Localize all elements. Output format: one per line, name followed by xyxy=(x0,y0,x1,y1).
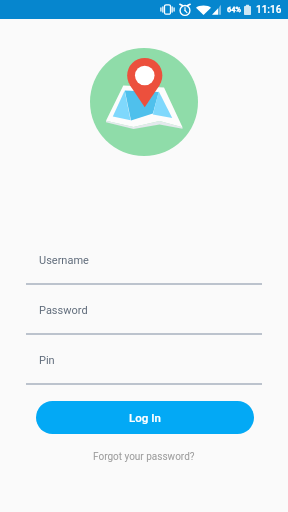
staticText: 64% xyxy=(227,5,242,14)
staticText: Log In xyxy=(129,411,161,424)
button[interactable]: Password xyxy=(26,302,262,335)
button[interactable]: Forgot your password? xyxy=(83,447,205,467)
staticText: Username xyxy=(39,254,89,267)
staticText: Password xyxy=(39,304,88,317)
button[interactable]: Pin xyxy=(26,352,262,385)
staticText: Pin xyxy=(39,354,55,367)
button[interactable]: Username xyxy=(26,252,262,285)
other: App logo xyxy=(90,48,198,156)
staticText: Forgot your password? xyxy=(93,451,195,463)
staticText: 11:16 xyxy=(256,4,282,16)
button[interactable]: Log In xyxy=(36,401,254,434)
